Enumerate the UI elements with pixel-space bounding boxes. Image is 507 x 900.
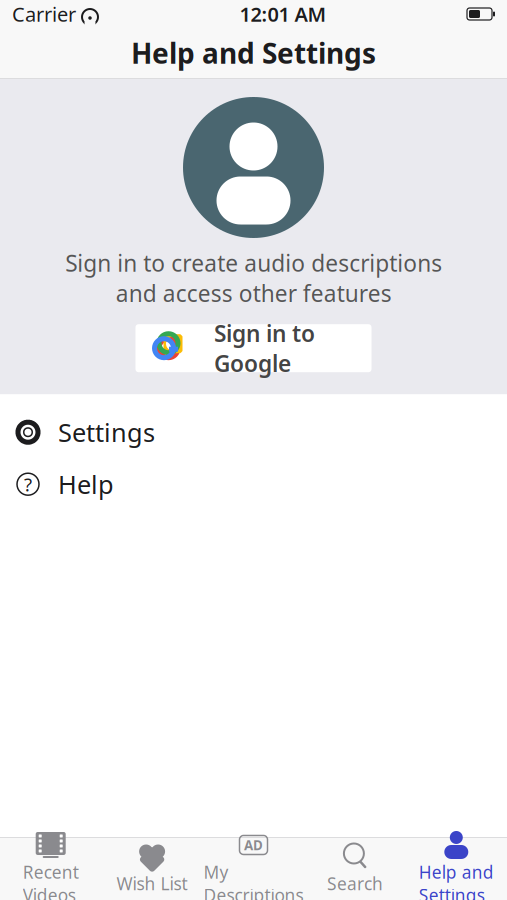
staticText: Search bbox=[327, 872, 383, 895]
button[interactable]: ? bbox=[0, 458, 507, 510]
staticText: 12:01 AM bbox=[239, 1, 326, 27]
button[interactable]: Wish List bbox=[101, 838, 203, 900]
staticText: Sign in to create audio descriptions and… bbox=[65, 248, 442, 308]
staticText: Help bbox=[58, 467, 114, 501]
staticText: Help and Settings bbox=[419, 860, 494, 900]
button[interactable]: Search bbox=[304, 838, 406, 900]
button[interactable]: AD bbox=[203, 838, 304, 900]
staticText: Recent Videos bbox=[23, 860, 79, 900]
staticText: ? bbox=[24, 472, 32, 497]
staticText: Wish List bbox=[117, 872, 188, 895]
button[interactable]: Settings bbox=[0, 406, 507, 458]
staticText: Settings bbox=[58, 415, 155, 449]
button[interactable]: Recent Videos bbox=[0, 838, 101, 900]
button[interactable]: Help and Settings bbox=[406, 838, 507, 900]
staticText: My Descriptions bbox=[203, 860, 303, 900]
staticText: Sign in to Google bbox=[214, 318, 315, 378]
staticText: Help and Settings bbox=[131, 34, 376, 72]
staticText: Carrier bbox=[12, 1, 76, 27]
staticText: AD bbox=[244, 836, 263, 854]
button[interactable]: Sign in to Google bbox=[135, 324, 371, 372]
